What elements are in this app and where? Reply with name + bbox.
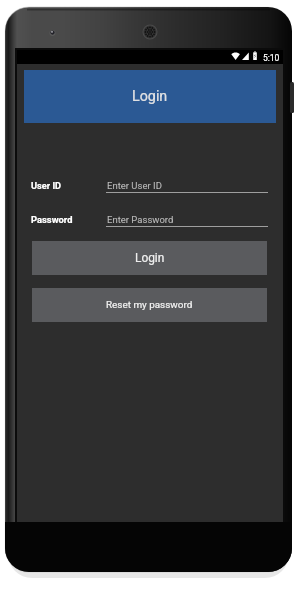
button[interactable]: Login (32, 241, 267, 275)
button[interactable]: Login (24, 70, 276, 123)
staticText: User ID (31, 180, 62, 191)
button[interactable]: Reset my password (32, 288, 267, 322)
staticText: Login (135, 251, 165, 265)
staticText: 5:10 (263, 53, 280, 63)
button[interactable]: User ID (17, 174, 283, 196)
staticText: Password (31, 214, 73, 225)
staticText: Reset my password (106, 299, 193, 311)
button[interactable]: Password (17, 208, 283, 230)
staticText: Enter Password (107, 214, 174, 225)
staticText: Enter User ID (107, 180, 162, 191)
staticText: Login (132, 88, 168, 105)
